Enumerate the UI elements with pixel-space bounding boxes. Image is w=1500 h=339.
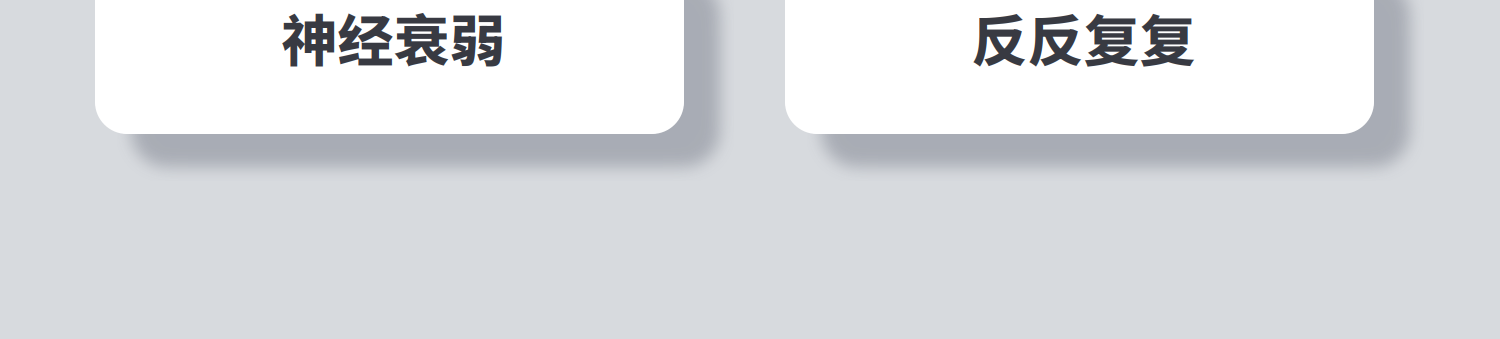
staticText: 反反复复 xyxy=(971,0,1195,78)
button[interactable]: 神经衰弱 xyxy=(95,0,684,134)
staticText: 神经衰弱 xyxy=(281,0,505,78)
button[interactable]: 反反复复 xyxy=(785,0,1374,134)
